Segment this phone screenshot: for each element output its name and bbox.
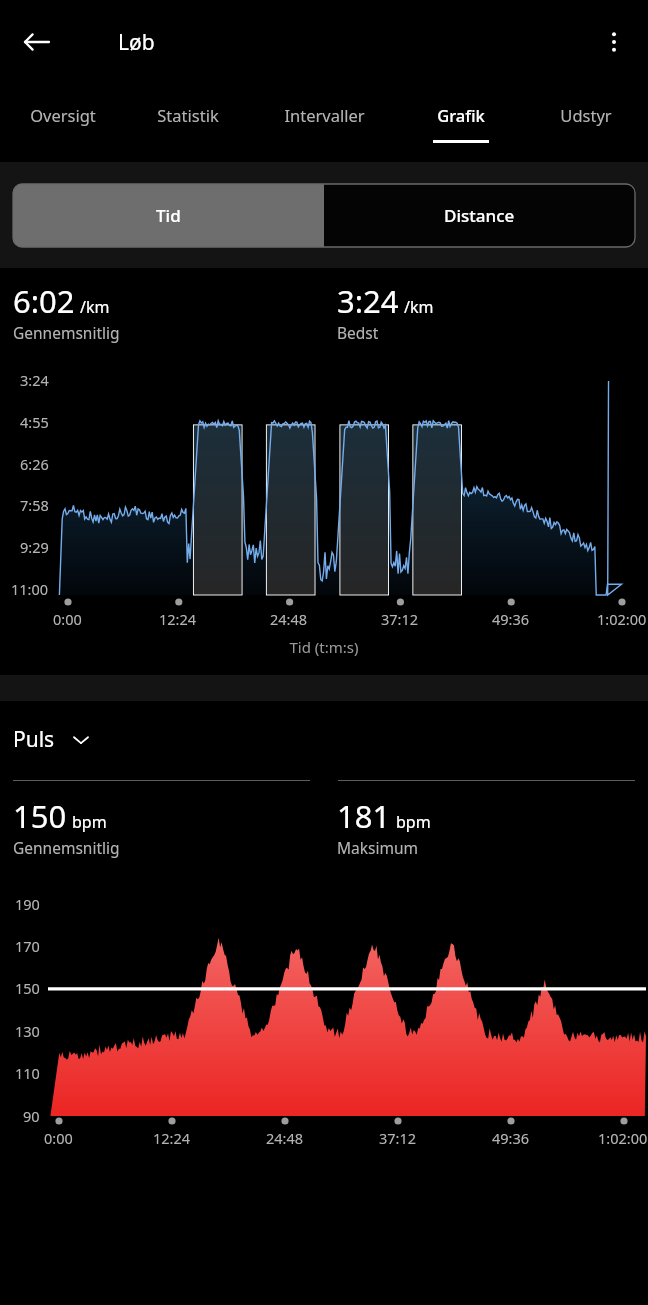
staticText: 150 [13, 795, 67, 837]
staticText: Løb [118, 28, 155, 57]
staticText: /km [80, 296, 110, 318]
staticText: 12:24 [153, 1128, 191, 1148]
staticText: 49:36 [492, 609, 530, 629]
staticText: 90 [23, 1106, 40, 1126]
staticText: 1:02:00 [597, 609, 647, 629]
staticText: 7:58 [20, 495, 49, 515]
staticText: 130 [15, 1021, 40, 1041]
staticText: bpm [72, 811, 107, 833]
staticText: 3:24 [20, 370, 49, 390]
button[interactable]: Grafik [398, 84, 523, 162]
staticText: Puls [13, 725, 55, 754]
button[interactable]: Oversigt [0, 84, 125, 162]
staticText: 0:00 [53, 609, 82, 629]
staticText: 190 [15, 894, 40, 914]
button[interactable]: More options [588, 16, 640, 68]
staticText: 37:12 [381, 609, 419, 629]
button[interactable]: Distance [324, 184, 635, 247]
staticText: Gennemsnitlig [13, 837, 120, 858]
staticText: Maksimum [337, 837, 419, 858]
staticText: Udstyr [560, 104, 612, 126]
staticText: 49:36 [492, 1128, 530, 1148]
staticText: Statistik [157, 104, 219, 126]
button[interactable]: Puls [13, 725, 95, 754]
staticText: Oversigt [30, 104, 96, 126]
staticText: 37:12 [379, 1128, 417, 1148]
staticText: 4:55 [20, 412, 49, 432]
staticText: /km [404, 296, 434, 318]
button[interactable]: Intervaller [250, 84, 398, 162]
staticText: 6:26 [20, 454, 49, 474]
staticText: 3:24 [337, 280, 399, 322]
staticText: 9:29 [20, 537, 49, 557]
staticText: 0:00 [44, 1128, 73, 1148]
staticText: Distance [444, 204, 515, 227]
staticText: Gennemsnitlig [13, 322, 120, 343]
button[interactable]: Back [11, 16, 63, 68]
staticText: bpm [396, 811, 431, 833]
staticText: 24:48 [266, 1128, 304, 1148]
staticText: Tid (t:m:s) [0, 637, 648, 657]
staticText: 11:00 [11, 579, 49, 599]
button[interactable]: Tid [13, 184, 324, 247]
button[interactable]: Udstyr [523, 84, 648, 162]
staticText: Tid [156, 204, 181, 227]
button[interactable]: Statistik [125, 84, 250, 162]
staticText: 12:24 [159, 609, 197, 629]
staticText: 110 [15, 1063, 40, 1083]
staticText: 6:02 [13, 280, 75, 322]
staticText: Grafik [437, 104, 485, 126]
staticText: 1:02:00 [598, 1128, 648, 1148]
staticText: Bedst [337, 322, 379, 343]
staticText: 181 [337, 795, 391, 837]
staticText: 170 [15, 936, 40, 956]
staticText: 150 [15, 978, 40, 998]
staticText: 24:48 [270, 609, 308, 629]
staticText: Intervaller [284, 104, 365, 126]
other: Expand [67, 726, 95, 754]
